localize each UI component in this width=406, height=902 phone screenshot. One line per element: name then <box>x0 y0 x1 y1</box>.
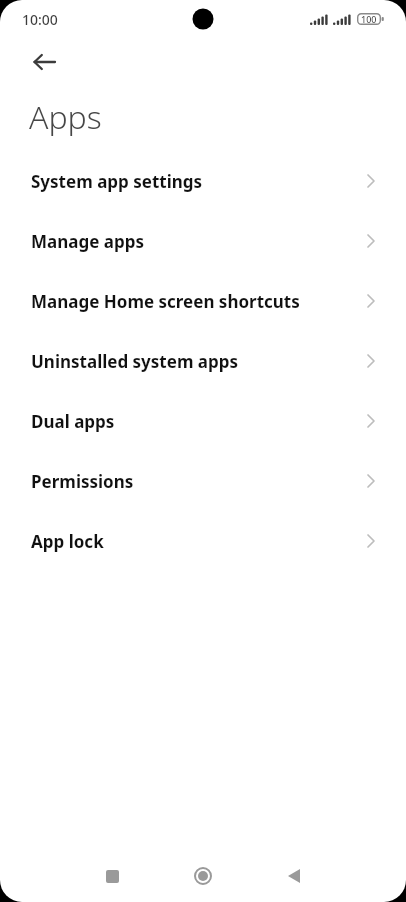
staticText: System app settings <box>31 170 203 193</box>
staticText: 100 <box>361 13 377 25</box>
button[interactable]: Uninstalled system apps <box>0 331 406 391</box>
button[interactable] <box>92 856 132 896</box>
staticText: Apps <box>29 95 102 139</box>
button[interactable]: Manage Home screen shortcuts <box>0 271 406 331</box>
staticText: Uninstalled system apps <box>31 350 239 373</box>
button[interactable]: System app settings <box>0 151 406 211</box>
button[interactable]: Dual apps <box>0 391 406 451</box>
button[interactable] <box>274 856 314 896</box>
staticText: Manage Home screen shortcuts <box>31 290 300 313</box>
button[interactable]: Manage apps <box>0 211 406 271</box>
staticText: Dual apps <box>31 410 115 433</box>
button[interactable]: App lock <box>0 511 406 571</box>
button[interactable] <box>24 42 64 82</box>
staticText: Permissions <box>31 470 134 493</box>
staticText: 10:00 <box>22 10 58 29</box>
button[interactable] <box>183 856 223 896</box>
staticText: App lock <box>31 530 104 553</box>
staticText: Manage apps <box>31 230 144 253</box>
button[interactable]: Permissions <box>0 451 406 511</box>
